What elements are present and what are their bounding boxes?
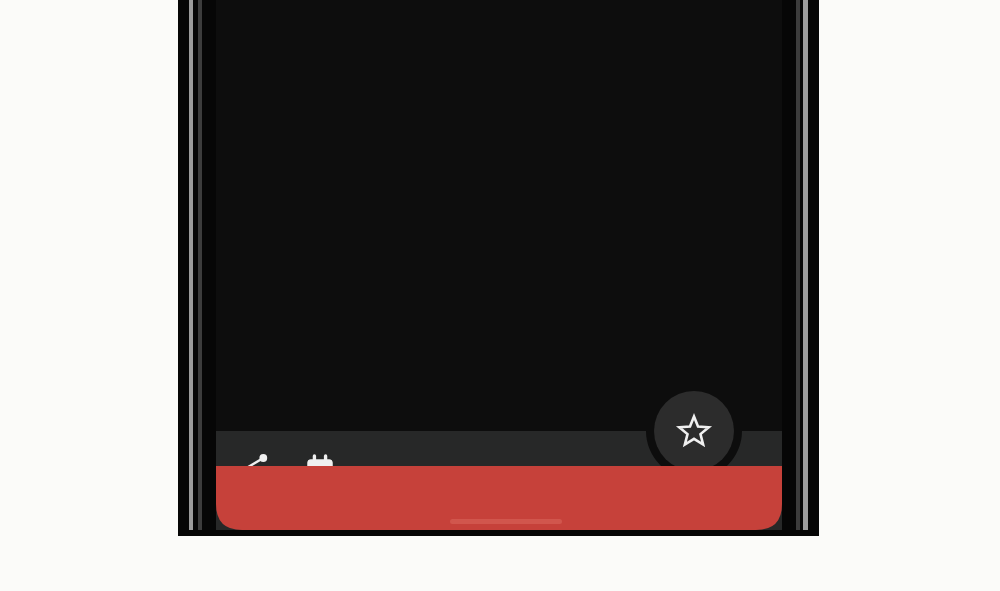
button[interactable]: Share xyxy=(226,437,282,493)
button[interactable]: Favourite xyxy=(654,391,734,471)
button[interactable]: Add to calendar xyxy=(292,437,348,493)
